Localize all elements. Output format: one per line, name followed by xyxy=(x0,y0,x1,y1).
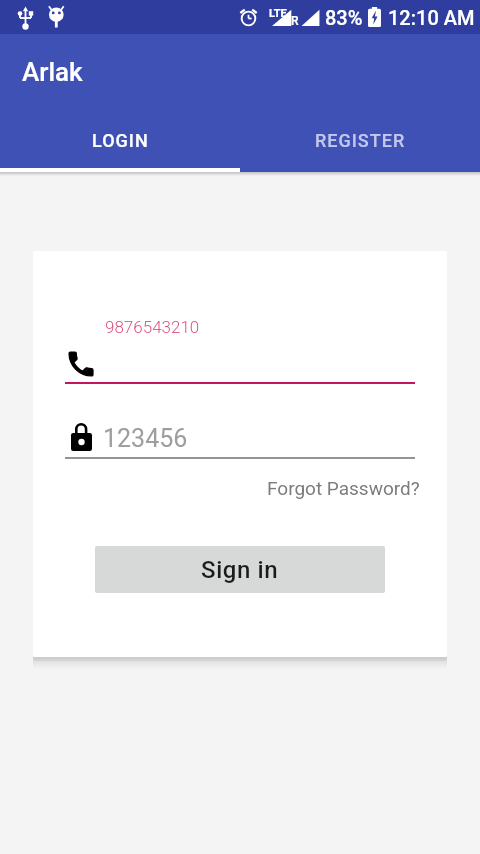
staticText: Sign in xyxy=(201,556,279,584)
button[interactable]: REGISTER xyxy=(240,113,480,168)
staticText: 12:10 AM xyxy=(388,6,475,29)
button[interactable]: Sign in xyxy=(95,546,385,593)
staticText: 83% xyxy=(325,6,363,29)
staticText: Arlak xyxy=(22,57,83,87)
staticText: Forgot Password? xyxy=(267,477,420,499)
button[interactable]: Password field xyxy=(65,411,415,459)
staticText: 9876543210 xyxy=(105,317,200,337)
staticText: REGISTER xyxy=(315,130,406,151)
staticText: R xyxy=(291,14,299,28)
button[interactable]: Forgot Password? xyxy=(262,472,425,504)
staticText: 123456 xyxy=(103,424,188,453)
button[interactable]: Phone number field xyxy=(65,309,415,384)
button[interactable]: LOGIN xyxy=(0,113,240,168)
staticText: LOGIN xyxy=(92,130,149,151)
staticText: LTE xyxy=(269,7,287,20)
